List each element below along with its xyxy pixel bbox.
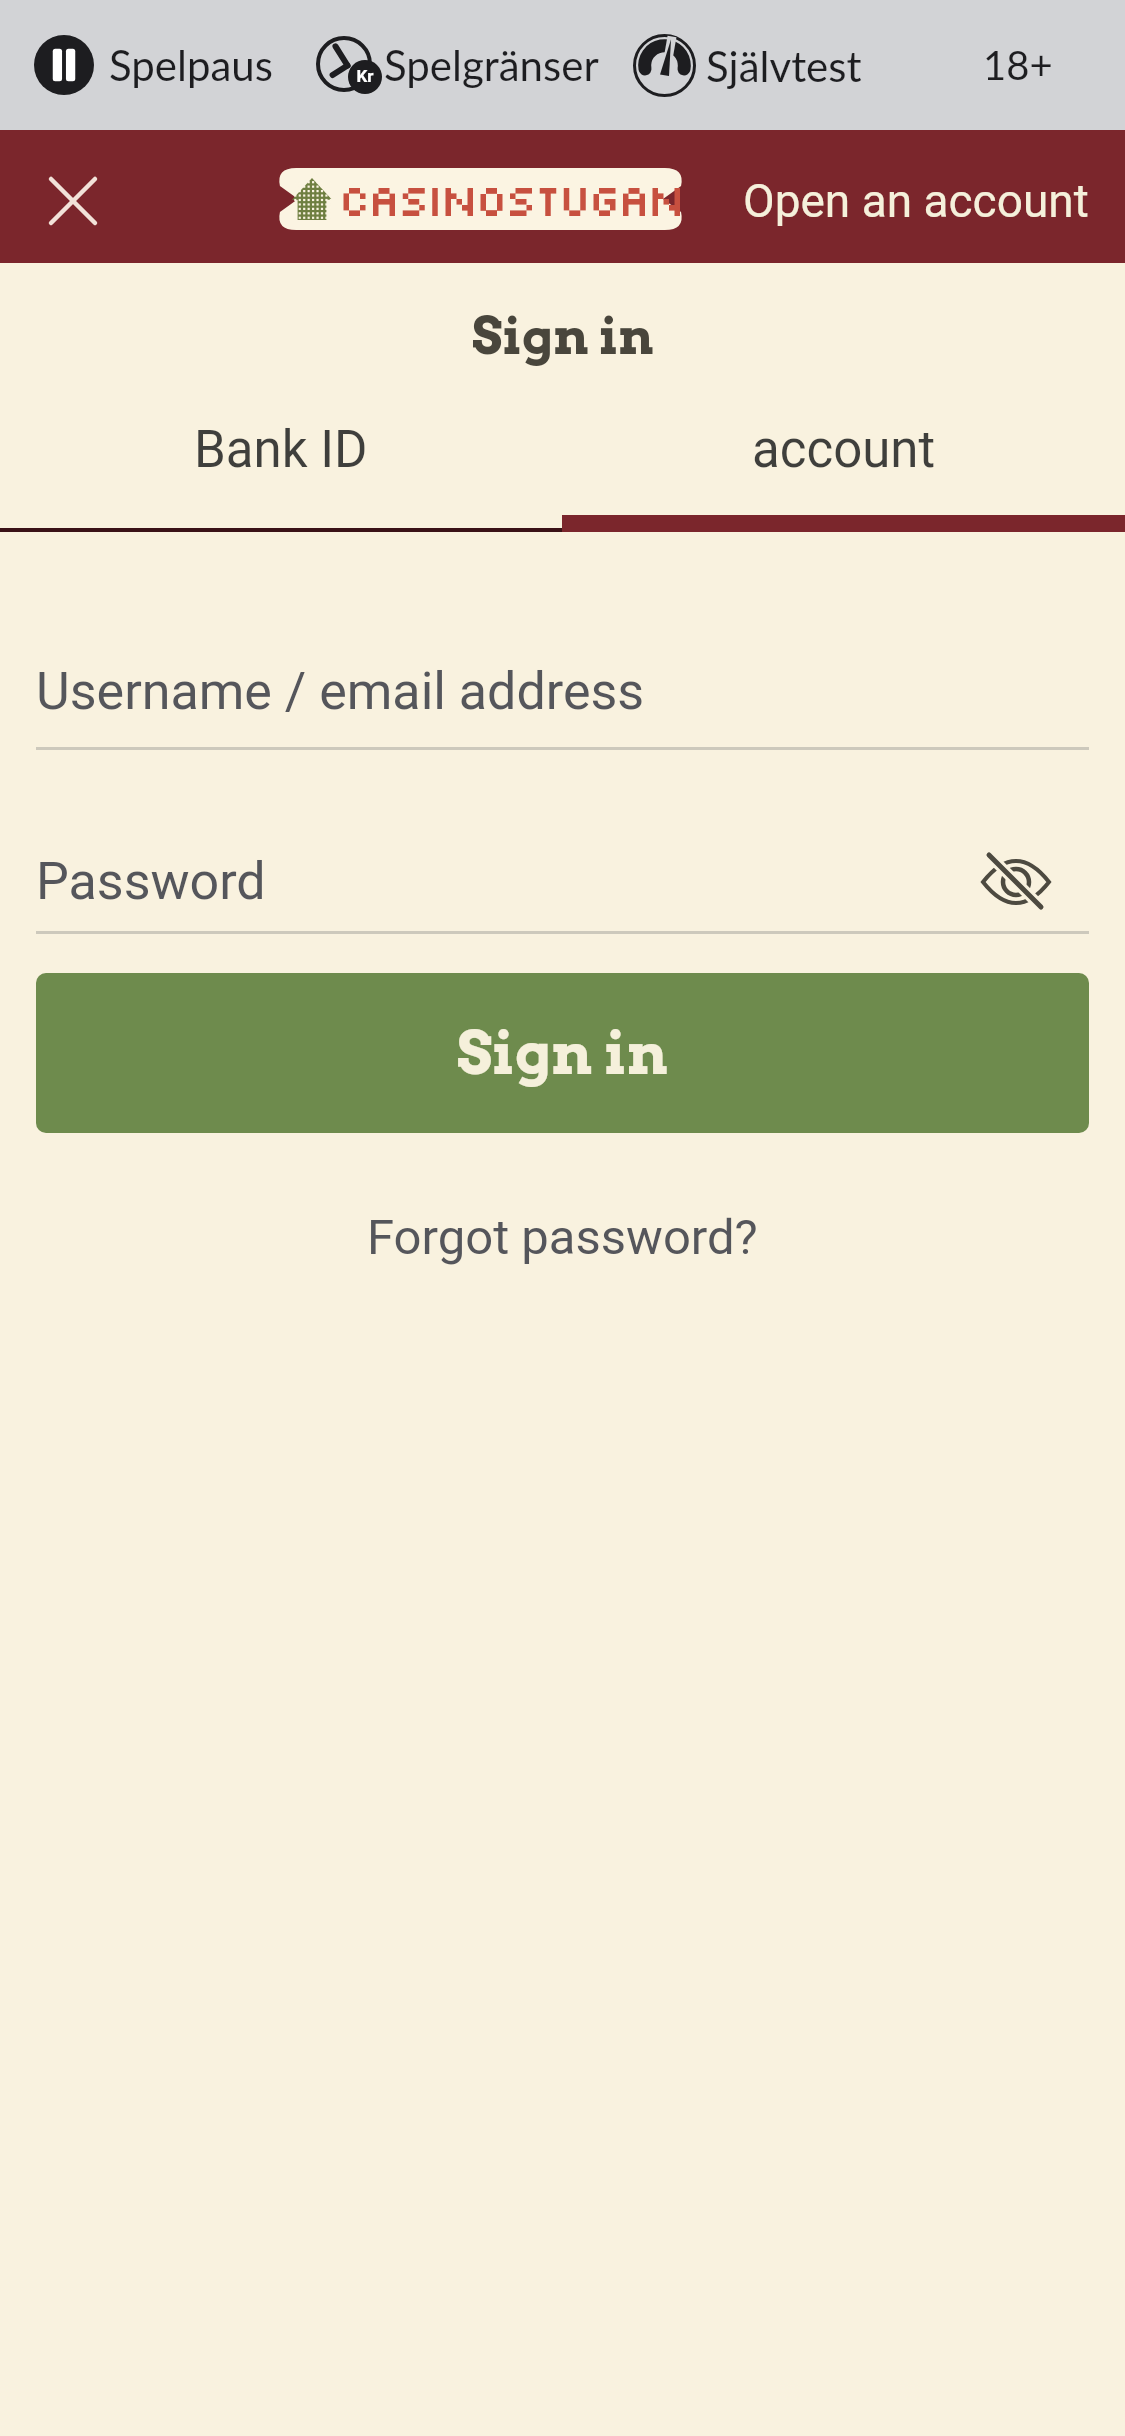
staticText: Forgot password? (367, 1209, 758, 1266)
button[interactable]: Kr (316, 36, 599, 94)
staticText: Open an account (743, 174, 1089, 228)
staticText: Sign in (457, 1018, 668, 1088)
button[interactable]: Bank ID (0, 415, 562, 485)
button[interactable]: Spelpaus (34, 35, 273, 95)
staticText: Kr (354, 66, 376, 88)
button[interactable]: Password (36, 846, 966, 916)
button[interactable]: CASINOSTUGAN (276, 168, 685, 230)
staticText: account (752, 420, 936, 480)
staticText: Sign in (472, 306, 654, 366)
staticText: CASINOSTUGAN (338, 171, 683, 227)
staticText: Spelgränser (384, 40, 599, 90)
button[interactable] (982, 852, 1050, 910)
staticText: Bank ID (194, 420, 368, 480)
button[interactable]: account (562, 415, 1125, 485)
button[interactable]: Open an account (743, 174, 1089, 228)
button[interactable]: Självtest (633, 34, 862, 97)
staticText: Självtest (706, 41, 862, 91)
button[interactable]: Username / email address (36, 656, 1089, 726)
staticText: Spelpaus (109, 40, 273, 90)
staticText: Password (36, 851, 266, 912)
button[interactable]: Forgot password? (367, 1209, 758, 1266)
button[interactable] (50, 178, 96, 224)
staticText: 18+ (983, 41, 1053, 89)
staticText: Username / email address (36, 661, 645, 722)
button[interactable]: Sign in (36, 973, 1089, 1133)
